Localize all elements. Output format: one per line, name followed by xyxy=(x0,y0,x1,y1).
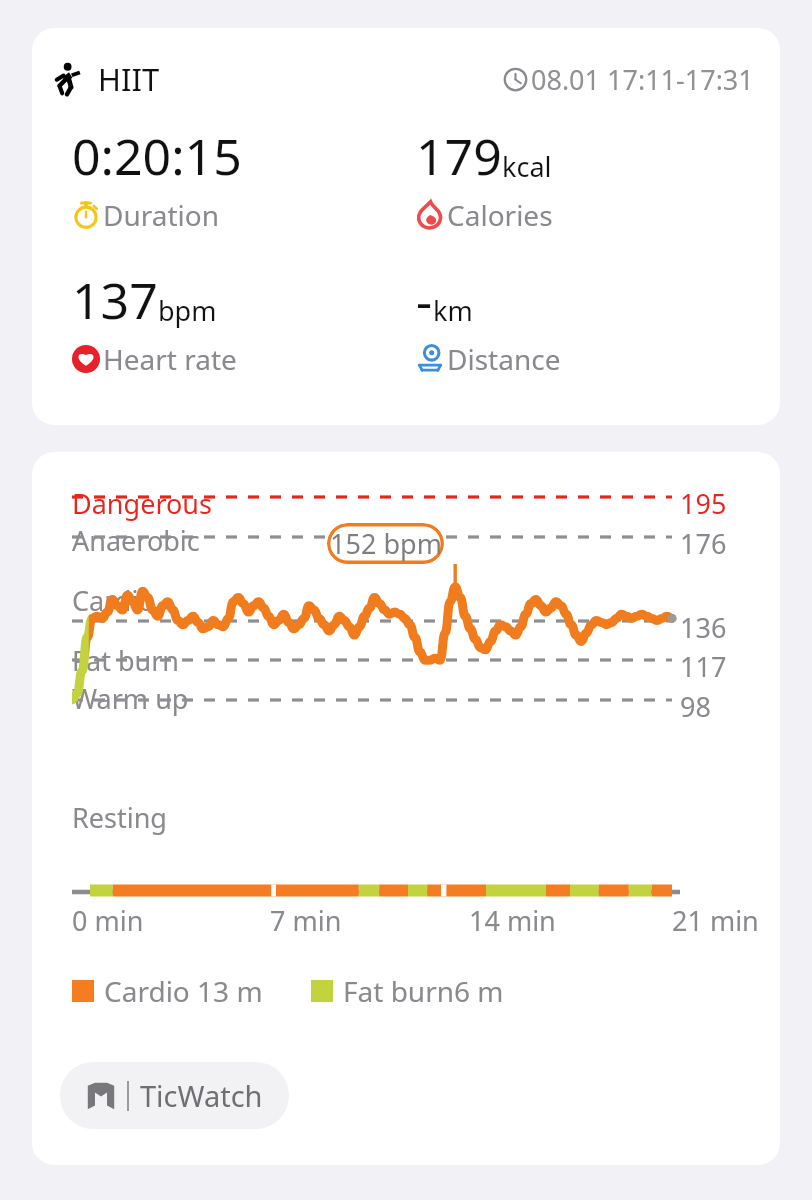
button[interactable]: 179 xyxy=(416,122,760,234)
staticText: 14 min xyxy=(469,902,556,939)
staticText: 98 xyxy=(680,688,711,725)
staticText: 152 bpm xyxy=(330,525,442,562)
staticText: 21 min xyxy=(672,902,759,939)
staticText: 136 xyxy=(680,609,727,646)
staticText: 7 min xyxy=(270,902,342,939)
button[interactable]: 0:20:15 xyxy=(72,122,416,234)
staticText: Resting xyxy=(72,799,167,836)
staticText: - xyxy=(416,266,433,334)
staticText: Heart rate xyxy=(103,340,237,378)
button[interactable]: Dangerous xyxy=(32,452,780,1165)
staticText: 176 xyxy=(680,525,727,562)
staticText: Dangerous xyxy=(72,485,212,522)
staticText: Fat burn xyxy=(72,642,180,679)
staticText: Distance xyxy=(447,340,561,378)
staticText: Calories xyxy=(447,196,553,234)
staticText: km xyxy=(433,292,473,329)
staticText: 0 min xyxy=(72,902,144,939)
staticText: TicWatch xyxy=(140,1076,263,1115)
staticText: HIIT xyxy=(98,58,160,100)
staticText: 137 xyxy=(72,266,158,334)
staticText: Warm up xyxy=(72,680,189,717)
staticText: 08.01 17:11-17:31 xyxy=(531,61,754,98)
staticText: bpm xyxy=(158,292,217,329)
staticText: kcal xyxy=(502,148,552,185)
staticText: 195 xyxy=(680,485,727,522)
staticText: Fat burn6 m xyxy=(343,972,504,1010)
staticText: Anaerobic xyxy=(72,522,200,559)
button[interactable]: 137 xyxy=(72,266,416,378)
staticText: 0:20:15 xyxy=(72,122,242,190)
button[interactable]: TicWatch xyxy=(60,1062,289,1129)
staticText: Cardio 13 m xyxy=(104,972,263,1010)
button[interactable]: HIIT xyxy=(32,28,780,425)
button[interactable]: - xyxy=(416,266,760,378)
staticText: 117 xyxy=(680,648,727,685)
staticText: 179 xyxy=(416,122,502,190)
staticText: Cardio xyxy=(72,582,155,619)
staticText: Duration xyxy=(103,196,220,234)
